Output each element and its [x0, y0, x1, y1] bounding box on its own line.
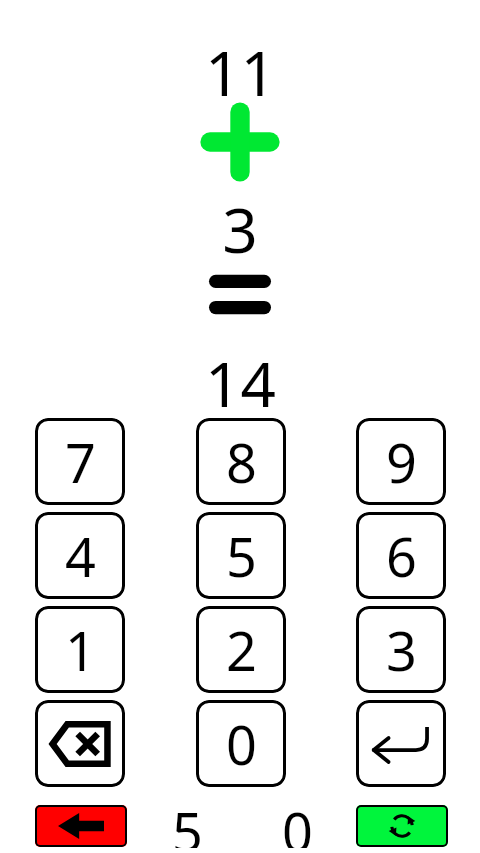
staticText: 14: [205, 341, 276, 425]
button[interactable]: 6: [356, 512, 446, 599]
staticText: 3: [386, 613, 417, 687]
button[interactable]: 5: [196, 512, 286, 599]
staticText: 5: [172, 794, 203, 848]
button[interactable]: 0: [196, 700, 286, 787]
staticText: 9: [386, 425, 417, 499]
staticText: 0: [282, 794, 313, 848]
staticText: 5: [226, 519, 257, 593]
staticText: 3: [222, 187, 258, 271]
staticText: 0: [226, 707, 257, 781]
button[interactable]: 4: [35, 512, 125, 599]
staticText: 2: [226, 613, 257, 687]
staticText: 8: [226, 425, 257, 499]
button[interactable]: 3: [356, 606, 446, 693]
staticText: 1: [65, 613, 96, 687]
button[interactable]: Backspace: [35, 700, 125, 787]
staticText: 6: [386, 519, 417, 593]
button[interactable]: Enter: [356, 700, 446, 787]
button[interactable]: 9: [356, 418, 446, 505]
button[interactable]: Back: [35, 805, 127, 847]
staticText: 4: [65, 519, 96, 593]
button[interactable]: 2: [196, 606, 286, 693]
staticText: 7: [65, 425, 96, 499]
button[interactable]: Restart: [356, 805, 448, 847]
button[interactable]: 8: [196, 418, 286, 505]
staticText: 11: [205, 30, 276, 114]
button[interactable]: 1: [35, 606, 125, 693]
button[interactable]: 7: [35, 418, 125, 505]
